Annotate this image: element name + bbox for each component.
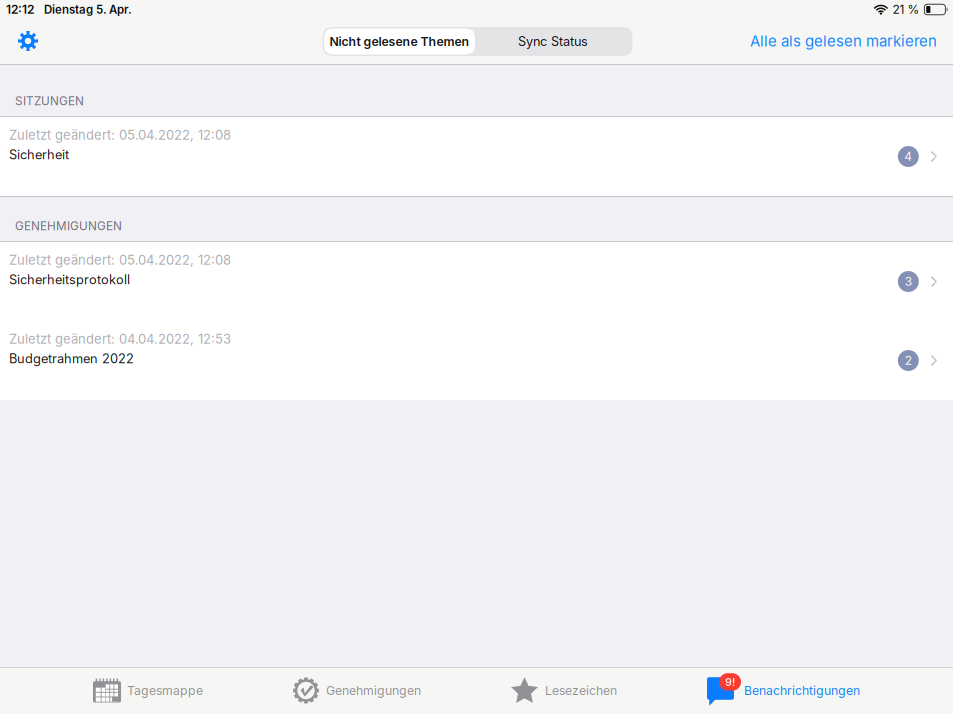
staticText: GENEHMIGUNGEN <box>15 219 122 233</box>
button[interactable]: Sync Status <box>475 28 631 54</box>
staticText: 2 <box>905 353 912 368</box>
staticText: 9! <box>725 675 735 688</box>
staticText: 21 % <box>892 2 919 17</box>
button[interactable]: Genehmigungen <box>293 667 421 714</box>
staticText: Genehmigungen <box>326 683 421 698</box>
staticText: Zuletzt geändert: 04.04.2022, 12:53 <box>9 331 231 347</box>
button[interactable]: Einstellungen <box>8 21 48 61</box>
staticText: Sicherheit <box>9 147 69 162</box>
staticText: 12:12 <box>6 2 34 17</box>
button[interactable]: Zuletzt geändert: 05.04.2022, 12:08 <box>0 117 953 196</box>
staticText: Dienstag 5. Apr. <box>44 3 132 16</box>
button[interactable]: Zuletzt geändert: 05.04.2022, 12:08 <box>0 242 953 321</box>
button[interactable]: Tagesmappe <box>93 667 203 714</box>
staticText: Alle als gelesen markieren <box>750 32 937 50</box>
staticText: 3 <box>905 274 912 289</box>
staticText: Sync Status <box>518 34 588 49</box>
staticText: Nicht gelesene Themen <box>329 34 469 49</box>
staticText: Benachrichtigungen <box>744 683 860 698</box>
button[interactable]: 9! <box>707 667 860 714</box>
staticText: Zuletzt geändert: 05.04.2022, 12:08 <box>9 127 231 143</box>
button[interactable]: Alle als gelesen markieren <box>743 21 944 61</box>
button[interactable]: Lesezeichen <box>511 667 617 714</box>
button[interactable]: Zuletzt geändert: 04.04.2022, 12:53 <box>0 321 953 400</box>
staticText: Zuletzt geändert: 05.04.2022, 12:08 <box>9 252 231 268</box>
staticText: SITZUNGEN <box>15 94 84 108</box>
staticText: 4 <box>904 149 912 164</box>
button[interactable]: Nicht gelesene Themen <box>324 28 475 54</box>
staticText: Tagesmappe <box>127 683 203 698</box>
staticText: Lesezeichen <box>545 683 617 698</box>
staticText: Sicherheitsprotokoll <box>9 272 130 287</box>
staticText: Budgetrahmen 2022 <box>9 351 134 366</box>
